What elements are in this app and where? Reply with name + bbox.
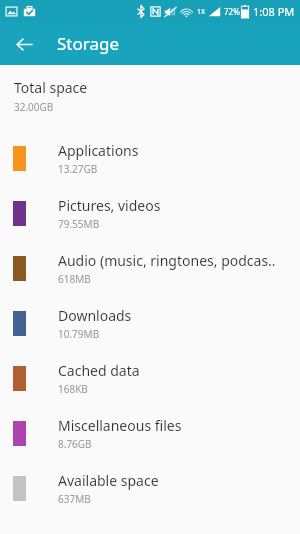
staticText: 13.27GB: [58, 162, 98, 176]
button[interactable]: Audio (music, ringtones, podcas..: [0, 241, 300, 296]
staticText: Available space: [58, 471, 159, 490]
staticText: Miscellaneous files: [58, 416, 182, 435]
button[interactable]: Downloads: [0, 296, 300, 351]
staticText: 1X: [197, 7, 206, 17]
staticText: 79.55MB: [58, 217, 100, 231]
staticText: 8.76GB: [58, 437, 92, 451]
staticText: Total space: [14, 78, 88, 97]
staticText: Storage: [57, 32, 120, 55]
button[interactable]: Back: [8, 28, 40, 60]
button[interactable]: Pictures, videos: [0, 186, 300, 241]
staticText: Cached data: [58, 361, 140, 380]
button[interactable]: Applications: [0, 131, 300, 186]
staticText: 618MB: [58, 272, 91, 286]
staticText: 72%: [224, 6, 240, 17]
staticText: Audio (music, ringtones, podcas..: [58, 251, 276, 270]
staticText: 168KB: [58, 382, 88, 396]
staticText: Pictures, videos: [58, 196, 161, 215]
staticText: 1:08 PM: [253, 4, 295, 19]
button[interactable]: Available space: [0, 461, 300, 516]
staticText: Applications: [58, 141, 139, 160]
button[interactable]: Cached data: [0, 351, 300, 406]
button[interactable]: Miscellaneous files: [0, 406, 300, 461]
staticText: 10.79MB: [58, 327, 100, 341]
staticText: 32.00GB: [14, 100, 54, 114]
staticText: Downloads: [58, 306, 132, 325]
staticText: 637MB: [58, 492, 91, 506]
